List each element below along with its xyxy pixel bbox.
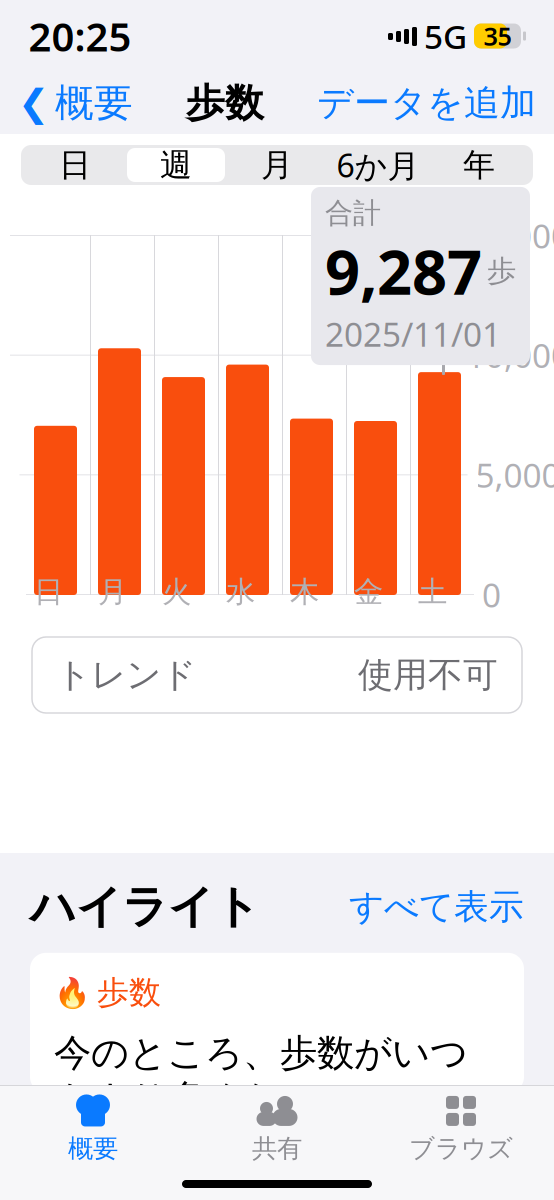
staticText: 15,000 [466, 213, 554, 258]
staticText: 火 [162, 574, 191, 610]
staticText: 20:25 [28, 9, 131, 62]
staticText: 年 [463, 145, 495, 185]
staticText: 水 [226, 574, 255, 610]
staticText: 使用不可 [358, 654, 498, 696]
staticText: トレンド [56, 654, 196, 696]
button[interactable]: 概要 [1, 1098, 185, 1160]
staticText: データを追加 [317, 81, 536, 125]
button[interactable]: ブラウズ [369, 1098, 553, 1160]
staticText: 土 [418, 574, 447, 610]
button[interactable]: ❮ [0, 71, 133, 135]
staticText: 6か月 [336, 144, 419, 186]
staticText: 35 [483, 19, 511, 53]
button[interactable]: 6か月 [327, 145, 428, 185]
staticText: 0 [482, 572, 501, 617]
staticText: 9,287 [325, 230, 482, 312]
staticText: 歩 [487, 253, 516, 289]
staticText: 週 [160, 145, 192, 185]
staticText: 歩数 [186, 79, 264, 127]
staticText: 概要 [68, 1133, 118, 1164]
staticText: 5,000 [475, 453, 554, 497]
staticText: 金 [354, 574, 383, 610]
staticText: 月 [261, 145, 293, 185]
staticText: 日 [34, 574, 63, 610]
button[interactable]: すべて表示 [349, 880, 524, 934]
staticText: 月 [98, 574, 127, 610]
staticText: 共有 [252, 1133, 302, 1164]
staticText: 日 [59, 145, 91, 185]
staticText: 2025/11/01 [325, 312, 501, 356]
staticText: ハイライト [30, 879, 260, 935]
staticText: 歩数 [97, 973, 161, 1012]
button[interactable]: トレンド [32, 637, 522, 713]
button[interactable]: 🔥 [30, 953, 524, 1093]
staticText: 今のところ、歩数がいつもより多くなって [54, 1030, 468, 1122]
staticText: ❮ [18, 82, 49, 124]
staticText: います。 [54, 1128, 205, 1174]
staticText: ブラウズ [409, 1133, 513, 1164]
staticText: すべて表示 [349, 886, 524, 928]
button[interactable]: 月 [226, 145, 327, 185]
button[interactable]: データを追加 [317, 73, 554, 133]
button[interactable]: 共有 [185, 1098, 369, 1160]
button[interactable]: 日 [24, 145, 125, 185]
staticText: 5G [424, 14, 467, 58]
staticText: 木 [290, 574, 319, 610]
button[interactable]: 年 [428, 145, 529, 185]
staticText: 概要 [55, 79, 133, 127]
staticText: 🔥 [54, 976, 91, 1009]
staticText: 合計 [325, 196, 381, 230]
staticText: 10,000 [466, 333, 554, 377]
button[interactable]: 週 [125, 145, 226, 185]
